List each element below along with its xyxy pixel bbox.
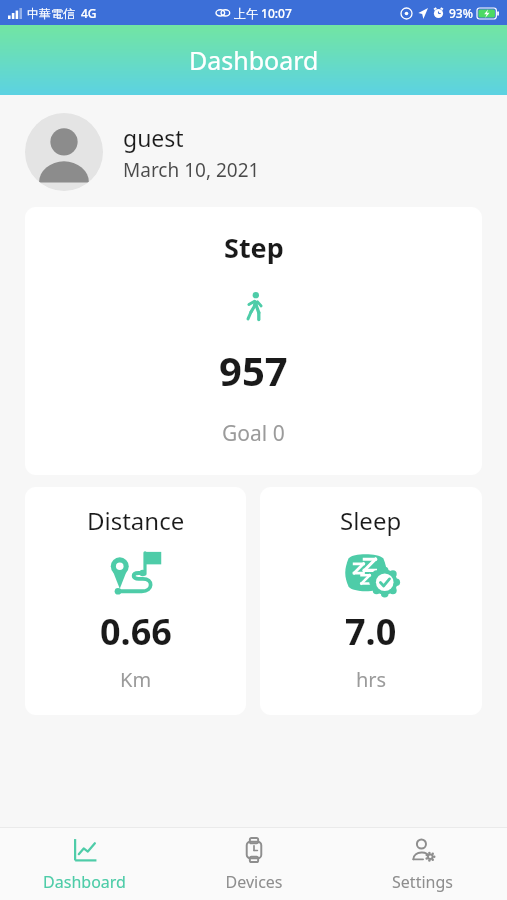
button[interactable]: Dashboard [0, 828, 169, 900]
staticText: hrs [356, 666, 387, 693]
staticText: March 10, 2021 [123, 157, 260, 183]
staticText: Distance [87, 504, 185, 537]
button[interactable]: Devices [169, 828, 338, 900]
staticText: 上午 10:07 [234, 5, 292, 21]
staticText: Km [120, 666, 152, 693]
staticText: Goal 0 [222, 419, 285, 448]
staticText: Sleep [340, 504, 402, 537]
staticText: Devices [225, 871, 283, 893]
button[interactable]: Settings [338, 828, 507, 900]
staticText: Step [224, 229, 284, 266]
staticText: Settings [392, 871, 453, 893]
staticText: 957 [219, 343, 288, 397]
staticText: 7.0 [345, 607, 397, 656]
staticText: 中華電信 [27, 6, 75, 21]
staticText: Dashboard [43, 871, 126, 893]
button[interactable]: guest [25, 113, 482, 191]
staticText: Dashboard [189, 43, 319, 77]
staticText: 93% [449, 5, 473, 21]
staticText: guest [123, 122, 184, 153]
button[interactable]: Step [25, 207, 482, 475]
staticText: 4G [81, 5, 97, 21]
staticText: 0.66 [100, 607, 172, 656]
button[interactable]: Sleep [260, 487, 482, 715]
button[interactable]: Distance [25, 487, 246, 715]
